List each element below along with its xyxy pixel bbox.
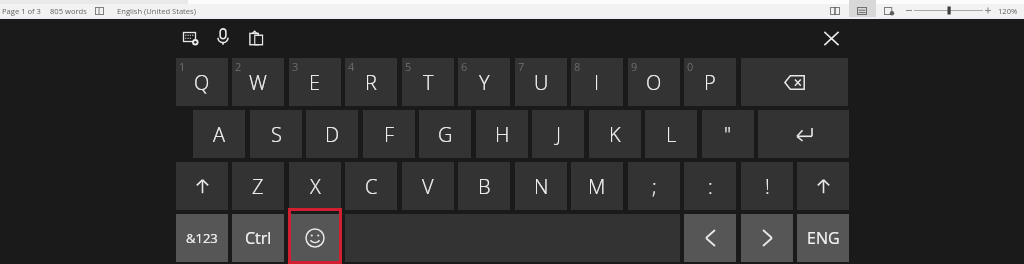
- button[interactable]: Ctrl: [232, 214, 284, 262]
- button[interactable]: &123: [176, 214, 228, 262]
- button[interactable]: 1: [176, 58, 228, 106]
- button[interactable]: M: [571, 162, 623, 210]
- staticText: Ctrl: [245, 227, 272, 249]
- button[interactable]: G: [419, 110, 471, 158]
- button[interactable]: B: [458, 162, 510, 210]
- staticText: 4: [348, 59, 355, 74]
- button[interactable]: 3: [289, 58, 341, 106]
- button[interactable]: 5: [402, 58, 454, 106]
- button[interactable]: 120%: [998, 6, 1018, 16]
- staticText: 0: [687, 59, 694, 74]
- button[interactable]: Emoji: [289, 214, 341, 262]
- button[interactable]: L: [645, 110, 697, 158]
- button[interactable]: H: [476, 110, 528, 158]
- staticText: 3: [292, 59, 299, 74]
- button[interactable]: 4: [345, 58, 397, 106]
- staticText: F: [384, 121, 395, 148]
- button[interactable]: Backspace: [741, 58, 848, 106]
- button[interactable]: 6: [458, 58, 510, 106]
- other: Next: [762, 229, 773, 247]
- button[interactable]: 8: [571, 58, 623, 106]
- staticText: ": [724, 121, 732, 148]
- button[interactable]: D: [306, 110, 358, 158]
- button[interactable]: Enter: [758, 110, 849, 158]
- staticText: O: [646, 69, 662, 96]
- button[interactable]: !: [741, 162, 793, 210]
- staticText: Q: [194, 69, 210, 96]
- staticText: D: [325, 121, 340, 148]
- staticText: U: [534, 69, 549, 96]
- button[interactable]: 7: [515, 58, 567, 106]
- staticText: T: [423, 69, 434, 96]
- button[interactable]: Print layout: [857, 7, 867, 15]
- other: Enter: [795, 127, 813, 142]
- button[interactable]: ;: [628, 162, 680, 210]
- button[interactable]: N: [515, 162, 567, 210]
- other: Shift: [817, 179, 830, 194]
- button[interactable]: X: [289, 162, 341, 210]
- button[interactable]: A: [193, 110, 245, 158]
- staticText: Z: [252, 173, 264, 200]
- staticText: B: [478, 173, 491, 200]
- staticText: S: [271, 121, 282, 148]
- other: Shift: [196, 179, 209, 194]
- button[interactable]: English (United States): [117, 6, 196, 16]
- other: Emoji: [305, 228, 325, 248]
- button[interactable]: 2: [232, 58, 284, 106]
- other: Backspace: [784, 75, 805, 90]
- other: Previous: [705, 229, 716, 247]
- staticText: 7: [518, 59, 525, 74]
- button[interactable]: Previous: [684, 214, 736, 262]
- button[interactable]: Web layout: [884, 7, 894, 15]
- button[interactable]: 805 words: [50, 6, 87, 16]
- button[interactable]: 9: [628, 58, 680, 106]
- staticText: ;: [652, 173, 657, 200]
- button[interactable]: Page 1 of 3: [2, 6, 41, 16]
- staticText: J: [556, 121, 561, 148]
- button[interactable]: V: [402, 162, 454, 210]
- button[interactable]: C: [345, 162, 397, 210]
- staticText: L: [666, 121, 677, 148]
- button[interactable]: :: [684, 162, 736, 210]
- button[interactable]: Proofing: [95, 7, 104, 15]
- button[interactable]: Clipboard: [249, 31, 263, 45]
- button[interactable]: Z: [232, 162, 284, 210]
- button[interactable]: Next: [741, 214, 793, 262]
- staticText: 8: [574, 59, 581, 74]
- staticText: E: [309, 69, 321, 96]
- staticText: V: [422, 173, 434, 200]
- button[interactable]: 0: [684, 58, 736, 106]
- staticText: P: [704, 69, 716, 96]
- staticText: A: [213, 121, 226, 148]
- button[interactable]: K: [589, 110, 641, 158]
- button[interactable]: ": [702, 110, 754, 158]
- staticText: 6: [461, 59, 468, 74]
- staticText: :: [708, 173, 713, 200]
- staticText: 1: [179, 59, 186, 74]
- button[interactable]: Close keyboard: [824, 31, 839, 46]
- staticText: C: [365, 173, 378, 200]
- staticText: R: [365, 69, 377, 96]
- staticText: G: [438, 121, 453, 148]
- button[interactable]: Shift: [176, 162, 228, 210]
- staticText: M: [588, 173, 606, 200]
- staticText: W: [249, 69, 267, 96]
- button[interactable]: ENG: [797, 214, 849, 262]
- button[interactable]: S: [250, 110, 302, 158]
- staticText: X: [310, 173, 321, 200]
- staticText: &123: [186, 229, 218, 247]
- button[interactable]: Shift: [797, 162, 849, 210]
- button[interactable]: Zoom: [903, 4, 993, 17]
- button[interactable]: Keyboard settings: [183, 31, 200, 46]
- staticText: 2: [235, 59, 242, 74]
- button[interactable]: J: [532, 110, 584, 158]
- button[interactable]: Voice typing: [217, 28, 229, 45]
- button[interactable]: F: [363, 110, 415, 158]
- button[interactable]: Read mode: [830, 7, 840, 15]
- staticText: N: [534, 173, 549, 200]
- staticText: I: [594, 69, 600, 96]
- staticText: 9: [631, 59, 638, 74]
- staticText: 5: [405, 59, 412, 74]
